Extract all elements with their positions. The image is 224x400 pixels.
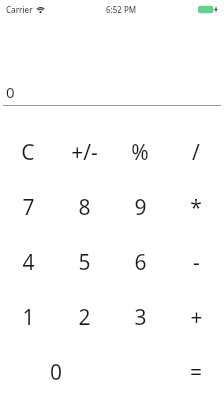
staticText: = bbox=[190, 358, 203, 387]
button[interactable]: 9 bbox=[112, 180, 168, 235]
button[interactable]: 4 bbox=[0, 235, 56, 290]
staticText: 1 bbox=[22, 303, 35, 332]
staticText: % bbox=[131, 138, 149, 167]
staticText: C bbox=[21, 138, 35, 167]
button[interactable]: % bbox=[112, 125, 168, 180]
button[interactable]: = bbox=[168, 345, 224, 400]
button[interactable]: - bbox=[168, 235, 224, 290]
other: Battery charging bbox=[198, 5, 219, 14]
button[interactable]: +/- bbox=[56, 125, 112, 180]
button[interactable]: * bbox=[168, 180, 224, 235]
staticText: 8 bbox=[78, 193, 91, 222]
staticText: +/- bbox=[71, 138, 98, 167]
button[interactable]: 1 bbox=[0, 290, 56, 345]
button[interactable]: 5 bbox=[56, 235, 112, 290]
staticText: 6:52 PM bbox=[106, 4, 137, 15]
button[interactable]: 3 bbox=[112, 290, 168, 345]
staticText: 0 bbox=[50, 358, 63, 387]
button[interactable]: 6 bbox=[112, 235, 168, 290]
staticText: 9 bbox=[134, 193, 147, 222]
button[interactable]: / bbox=[168, 125, 224, 180]
button[interactable]: 0 bbox=[0, 345, 112, 400]
button[interactable]: + bbox=[168, 290, 224, 345]
staticText: 5 bbox=[78, 248, 91, 277]
staticText: - bbox=[193, 248, 200, 277]
button[interactable]: 8 bbox=[56, 180, 112, 235]
staticText: * bbox=[190, 193, 202, 222]
staticText: Carrier bbox=[6, 4, 33, 15]
button[interactable]: 7 bbox=[0, 180, 56, 235]
staticText: 6 bbox=[134, 248, 147, 277]
staticText: / bbox=[192, 138, 200, 167]
staticText: 2 bbox=[78, 303, 91, 332]
staticText: 0 bbox=[6, 82, 15, 102]
staticText: 3 bbox=[134, 303, 147, 332]
staticText: 4 bbox=[22, 248, 35, 277]
button[interactable]: C bbox=[0, 125, 56, 180]
button[interactable]: 2 bbox=[56, 290, 112, 345]
button[interactable]: 0 bbox=[3, 82, 221, 106]
staticText: + bbox=[190, 303, 203, 332]
staticText: 7 bbox=[22, 193, 35, 222]
other: Wi-Fi bbox=[36, 5, 45, 13]
